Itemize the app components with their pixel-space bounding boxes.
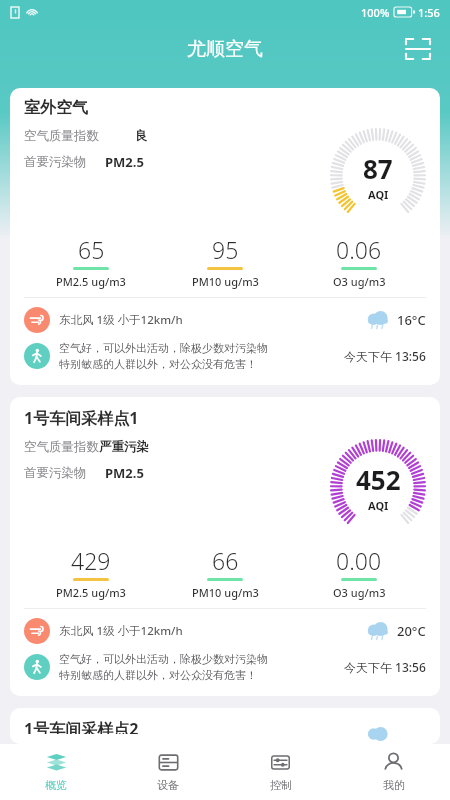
staticText: 100%: [361, 5, 390, 20]
staticText: 今天下午 13:56: [344, 659, 426, 675]
staticText: 东北风 1级 小于12km/h: [59, 623, 183, 639]
staticText: O3 ug/m3: [333, 585, 386, 600]
staticText: 特别敏感的人群以外，对公众没有危害！: [59, 668, 257, 682]
staticText: PM10 ug/m3: [192, 274, 259, 289]
button[interactable]: 1号车间采样点2: [10, 708, 440, 744]
staticText: 0.00: [336, 545, 382, 576]
staticText: 16°C: [397, 311, 426, 329]
staticText: 东北风 1级 小于12km/h: [59, 312, 183, 328]
staticText: 严重污染: [99, 439, 149, 455]
button[interactable]: 1号车间采样点1: [10, 397, 440, 696]
staticText: PM2.5 ug/m3: [56, 585, 126, 600]
button[interactable]: 室外空气: [10, 88, 440, 385]
staticText: 首要污染物: [24, 465, 87, 481]
staticText: 95: [212, 234, 239, 265]
staticText: 1号车间采样点2: [24, 718, 139, 734]
staticText: 429: [71, 545, 111, 576]
staticText: 0.06: [336, 234, 382, 265]
staticText: AQI: [368, 498, 389, 513]
staticText: PM2.5: [105, 153, 144, 171]
staticText: 今天下午 13:56: [344, 348, 426, 364]
staticText: PM10 ug/m3: [192, 585, 259, 600]
button[interactable]: Scan: [398, 29, 438, 69]
staticText: 452: [356, 462, 401, 497]
staticText: 空气好，可以外出活动，除极少数对污染物: [59, 652, 268, 666]
staticText: 20°C: [397, 622, 426, 640]
staticText: 良: [135, 128, 148, 144]
staticText: 空气质量指数: [24, 128, 99, 144]
staticText: PM2.5 ug/m3: [56, 274, 126, 289]
staticText: 1号车间采样点1: [24, 407, 139, 429]
staticText: 特别敏感的人群以外，对公众没有危害！: [59, 357, 257, 371]
button[interactable]: 设备: [112, 744, 224, 800]
button[interactable]: 我的: [337, 744, 450, 800]
staticText: AQI: [368, 187, 389, 202]
staticText: 空气好，可以外出活动，除极少数对污染物: [59, 341, 268, 355]
staticText: PM2.5: [105, 464, 144, 482]
button[interactable]: 概览: [0, 744, 112, 800]
staticText: 我的: [383, 778, 405, 792]
staticText: 空气质量指数: [24, 439, 99, 455]
staticText: 87: [363, 151, 393, 186]
staticText: 65: [78, 234, 105, 265]
staticText: O3 ug/m3: [333, 274, 386, 289]
button[interactable]: 控制: [224, 744, 337, 800]
staticText: 概览: [45, 778, 67, 792]
staticText: 设备: [157, 778, 179, 792]
staticText: 控制: [270, 778, 292, 792]
staticText: 66: [212, 545, 239, 576]
staticText: 室外空气: [24, 98, 88, 118]
staticText: 1:56: [418, 5, 440, 20]
staticText: 首要污染物: [24, 154, 87, 170]
staticText: 尤顺空气: [187, 37, 263, 61]
